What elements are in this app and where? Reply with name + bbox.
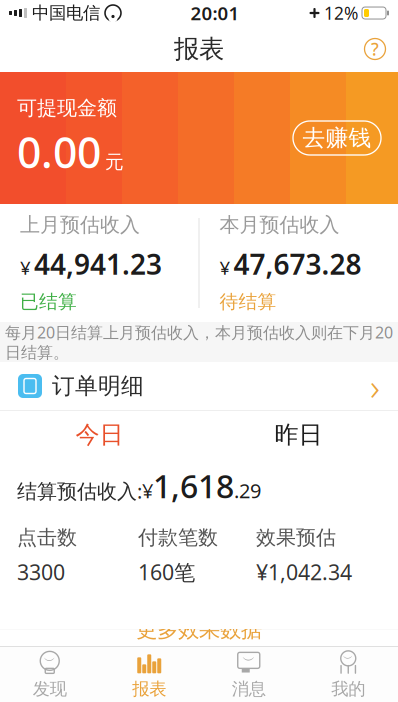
staticText: 12% <box>324 1 358 24</box>
staticText: ¥ <box>142 477 153 504</box>
staticText: 报表 <box>174 33 224 64</box>
staticText: 元 <box>105 151 124 174</box>
staticText: ︶ <box>242 652 255 669</box>
staticText: 上月预估收入 <box>20 213 140 237</box>
button[interactable]: 今日 <box>0 411 199 459</box>
staticText: 本月预估收入 <box>219 213 339 237</box>
staticText: 点击数 <box>17 525 77 550</box>
staticText: ︶ <box>343 652 354 665</box>
staticText: 0.00 <box>17 123 101 180</box>
staticText: ¥1,042.34 <box>256 558 352 586</box>
staticText: 昨日 <box>274 420 322 449</box>
button[interactable]: 帮助 <box>352 27 398 71</box>
staticText: 付款笔数 <box>138 525 218 550</box>
button[interactable]: 报表 <box>99 647 199 702</box>
staticText: 1,618 <box>153 465 234 507</box>
staticText: 我的 <box>331 678 365 700</box>
staticText: 3300 <box>17 558 65 586</box>
staticText: 消息 <box>232 678 266 700</box>
staticText: 发现 <box>33 678 67 700</box>
staticText: 160笔 <box>138 558 195 586</box>
staticText: 更多效果数据 <box>136 616 262 643</box>
button[interactable]: 去赚钱 <box>293 121 381 155</box>
staticText: 去赚钱 <box>302 124 371 152</box>
button[interactable]: 订单明细 <box>0 362 398 411</box>
staticText: 每月20日结算上月预估收入，本月预估收入则在下月20日结算。 <box>5 321 393 362</box>
button[interactable]: ︶ <box>0 647 99 702</box>
staticText: 44,941.23 <box>34 245 162 282</box>
staticText: ¥ <box>20 255 31 280</box>
staticText: 47,673.28 <box>233 245 361 282</box>
staticText: 效果预估 <box>256 525 336 550</box>
button[interactable]: ︶ <box>298 647 398 702</box>
staticText: 订单明细 <box>52 372 144 400</box>
staticText: › <box>370 361 380 411</box>
button[interactable]: ︶ <box>199 647 298 702</box>
staticText: ¥ <box>219 255 230 280</box>
staticText: 可提现金额 <box>17 96 117 120</box>
staticText: 中国电信 <box>32 2 100 24</box>
staticText: 待结算 <box>219 290 276 313</box>
staticText: 今日 <box>75 420 123 449</box>
staticText: 结算预估收入: <box>17 478 142 504</box>
staticText: 报表 <box>132 678 166 700</box>
button[interactable]: 昨日 <box>199 411 398 459</box>
staticText: 已结算 <box>20 290 77 313</box>
staticText: ︶ <box>44 653 56 668</box>
staticText: ? <box>371 37 379 60</box>
staticText: 20:01 <box>190 1 239 25</box>
staticText: .29 <box>234 477 261 504</box>
button[interactable]: 更多效果数据 <box>0 629 398 646</box>
